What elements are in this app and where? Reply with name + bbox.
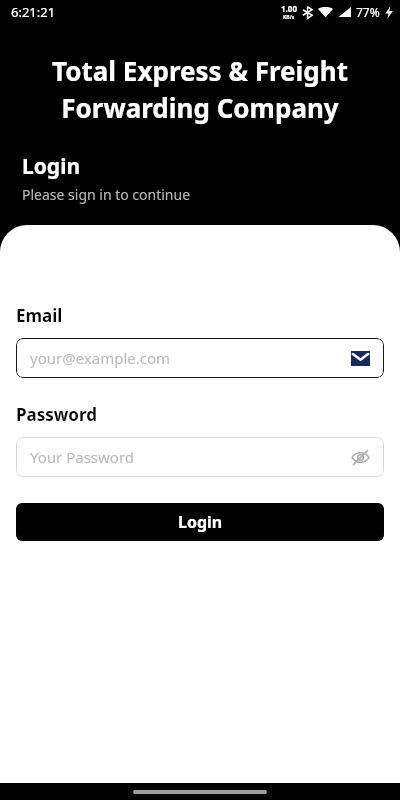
button[interactable]: Your Password — [16, 437, 384, 477]
staticText: Login — [22, 152, 81, 181]
button[interactable]: Email — [351, 351, 370, 366]
staticText: KB/s — [283, 14, 295, 21]
button[interactable]: your@example.com — [16, 338, 384, 378]
staticText: Total Express & Freight Forwarding Compa… — [20, 53, 380, 126]
staticText: Your Password — [30, 447, 348, 467]
staticText: Password — [16, 403, 97, 426]
staticText: Email — [16, 304, 63, 327]
staticText: 77% — [356, 4, 380, 20]
staticText: 1.00 — [281, 3, 297, 14]
staticText: 6:21:21 — [11, 3, 56, 21]
staticText: your@example.com — [30, 348, 351, 368]
button[interactable]: Show password — [348, 445, 372, 469]
button[interactable]: Login — [16, 503, 384, 541]
staticText: Login — [178, 511, 223, 533]
staticText: Please sign in to continue — [22, 185, 191, 204]
